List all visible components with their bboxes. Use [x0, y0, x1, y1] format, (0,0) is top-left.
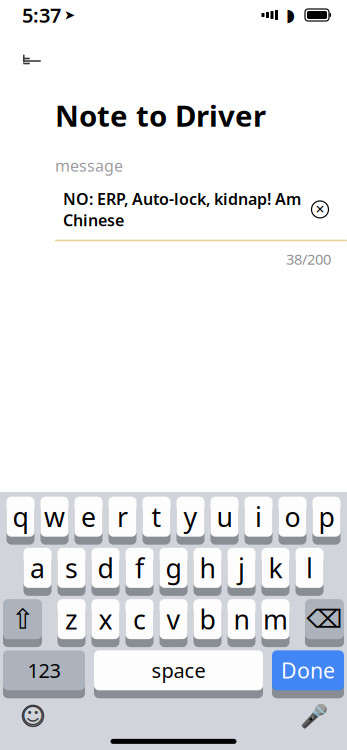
staticText: 🎤 — [300, 703, 328, 729]
staticText: ⌫ — [306, 605, 342, 633]
button[interactable]: z — [57, 602, 85, 644]
button[interactable]: 123 — [3, 654, 85, 695]
button[interactable]: y — [176, 500, 204, 541]
staticText: Done — [281, 656, 335, 684]
staticText: i — [255, 499, 262, 534]
staticText: t — [151, 499, 161, 534]
button[interactable]: Shift — [3, 602, 42, 644]
staticText: z — [65, 601, 78, 637]
button[interactable]: s — [57, 551, 85, 592]
button[interactable]: space — [94, 654, 263, 695]
button[interactable]: d — [91, 551, 119, 592]
staticText: a — [30, 550, 45, 586]
staticText: l — [306, 550, 313, 586]
button[interactable]: b — [193, 602, 221, 644]
button[interactable]: n — [227, 602, 255, 644]
button[interactable]: h — [193, 551, 221, 592]
staticText: ✕ — [315, 203, 325, 216]
staticText: g — [165, 550, 181, 586]
button[interactable]: m — [261, 602, 289, 644]
button[interactable]: j — [227, 551, 255, 592]
button[interactable]: e — [74, 500, 102, 541]
button[interactable]: t — [142, 500, 170, 541]
staticText: b — [199, 601, 215, 637]
button[interactable]: v — [159, 602, 187, 644]
staticText: w — [44, 499, 65, 534]
staticText: j — [238, 550, 245, 586]
button[interactable]: w — [40, 500, 68, 541]
button[interactable]: u — [210, 500, 238, 541]
button[interactable]: Delete — [305, 602, 344, 644]
button[interactable]: k — [261, 551, 289, 592]
button[interactable]: f — [125, 551, 153, 592]
staticText: h — [199, 550, 215, 586]
staticText: y — [183, 499, 197, 534]
staticText: o — [284, 499, 300, 534]
staticText: v — [166, 601, 180, 637]
staticText: n — [233, 601, 249, 637]
staticText: p — [318, 499, 334, 534]
button[interactable]: Back — [10, 44, 54, 78]
staticText: k — [268, 550, 282, 586]
staticText: 123 — [27, 657, 60, 684]
button[interactable]: a — [23, 551, 51, 592]
staticText: f — [135, 550, 144, 586]
button[interactable]: q — [6, 500, 34, 541]
staticText: u — [216, 499, 232, 534]
staticText: NO: ERP, Auto-lock, kidnap! Am Chinese — [63, 188, 301, 231]
staticText: 5:37 — [22, 2, 61, 28]
staticText: x — [98, 601, 112, 637]
staticText: s — [65, 550, 78, 586]
button[interactable]: l — [295, 551, 323, 592]
button[interactable]: x — [91, 602, 119, 644]
staticText: q — [12, 499, 28, 534]
staticText: e — [81, 499, 96, 534]
button[interactable]: r — [108, 500, 136, 541]
staticText: Note to Driver — [55, 96, 266, 135]
staticText: ◗ — [286, 5, 295, 25]
staticText: ☺ — [21, 703, 45, 729]
button[interactable]: Clear text — [309, 198, 331, 220]
button[interactable]: g — [159, 551, 187, 592]
staticText: d — [97, 550, 113, 586]
button[interactable]: Done — [272, 654, 344, 695]
staticText: 38/200 — [286, 249, 331, 269]
button[interactable]: i — [244, 500, 272, 541]
button[interactable]: p — [312, 500, 340, 541]
staticText: message — [55, 155, 123, 176]
staticText: ⇧ — [11, 603, 34, 635]
button[interactable]: Emoji — [18, 701, 48, 731]
staticText: m — [263, 601, 288, 637]
staticText: ➤ — [64, 7, 75, 22]
staticText: space — [151, 657, 205, 684]
button[interactable]: o — [278, 500, 306, 541]
staticText: c — [133, 601, 146, 637]
button[interactable]: Dictation — [299, 701, 329, 731]
staticText: r — [117, 499, 128, 534]
button[interactable]: c — [125, 602, 153, 644]
